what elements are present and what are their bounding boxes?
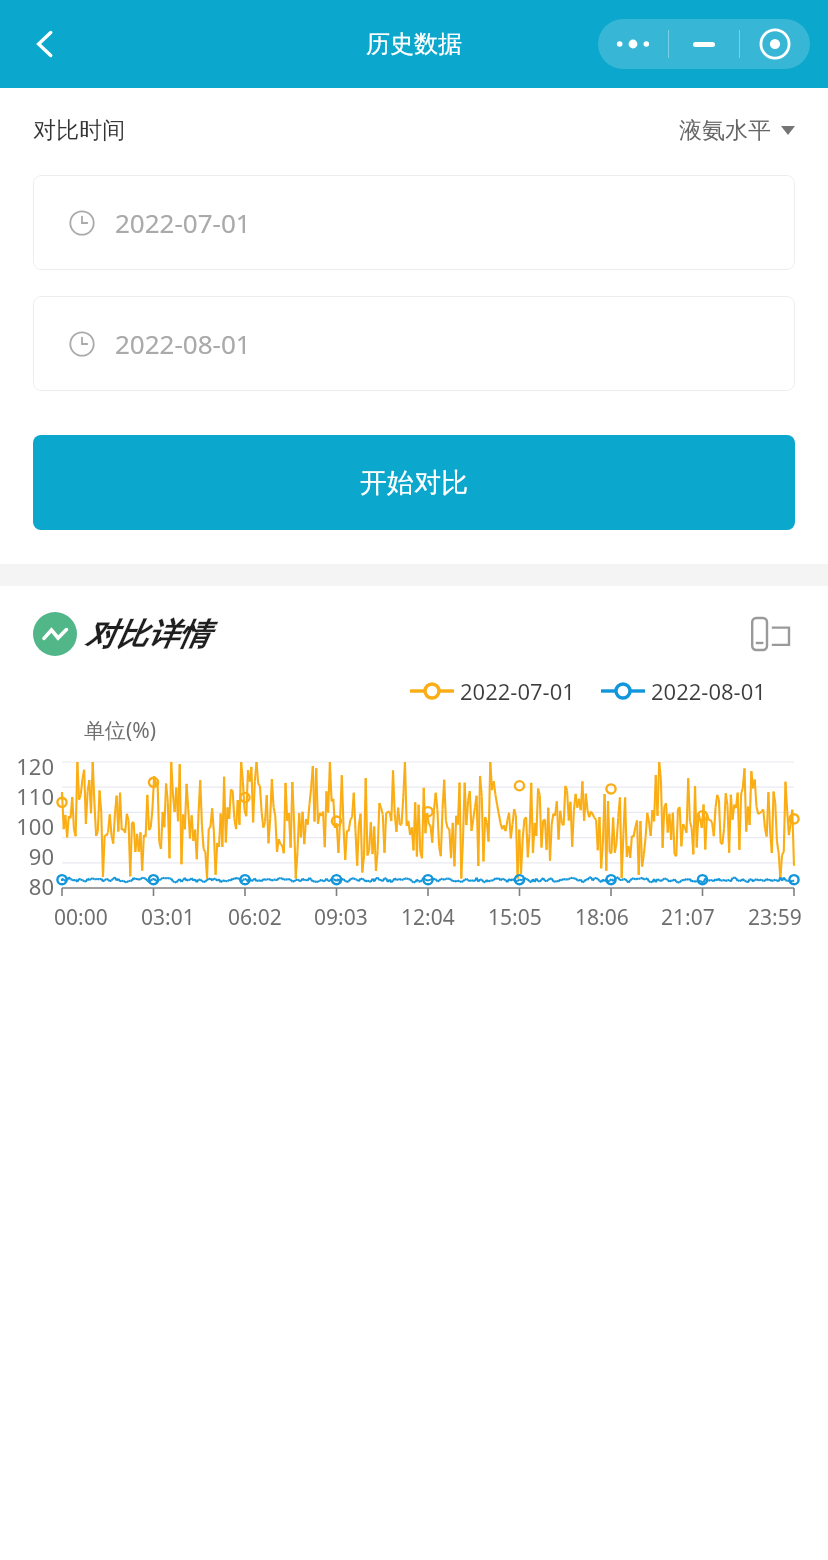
- staticText: 2022-08-01: [651, 676, 766, 706]
- button[interactable]: 横屏查看: [747, 610, 795, 658]
- staticText: 18:06: [575, 903, 629, 932]
- staticText: 09:03: [314, 903, 368, 932]
- staticText: 110: [16, 781, 54, 811]
- staticText: 2022-08-01: [115, 326, 251, 361]
- staticText: 单位(%): [84, 716, 157, 745]
- button[interactable]: 2022-08-01: [33, 296, 795, 391]
- staticText: 120: [16, 751, 54, 781]
- staticText: 00:00: [54, 903, 108, 932]
- staticText: 2022-07-01: [115, 205, 251, 240]
- staticText: 历史数据: [366, 29, 462, 59]
- staticText: 80: [28, 871, 54, 899]
- staticText: 90: [28, 841, 54, 871]
- staticText: 开始对比: [360, 466, 468, 500]
- staticText: 100: [16, 811, 54, 841]
- staticText: 03:01: [141, 903, 195, 932]
- staticText: 15:05: [488, 903, 542, 932]
- staticText: 23:59: [748, 903, 802, 932]
- staticText: 液氨水平: [679, 116, 771, 145]
- staticText: 2022-07-01: [460, 676, 575, 706]
- button[interactable]: 液氨水平: [679, 116, 795, 145]
- button[interactable]: 更多: [598, 19, 668, 69]
- button[interactable]: 开始对比: [33, 435, 795, 530]
- button[interactable]: 关闭: [740, 19, 810, 69]
- staticText: 21:07: [661, 903, 715, 932]
- staticText: 06:02: [228, 903, 282, 932]
- staticText: 对比时间: [33, 116, 125, 145]
- button[interactable]: 2022-07-01: [33, 175, 795, 270]
- button[interactable]: 最小化: [669, 19, 739, 69]
- staticText: 对比详情: [85, 615, 209, 654]
- staticText: 12:04: [401, 903, 455, 932]
- button[interactable]: 返回: [14, 13, 76, 75]
